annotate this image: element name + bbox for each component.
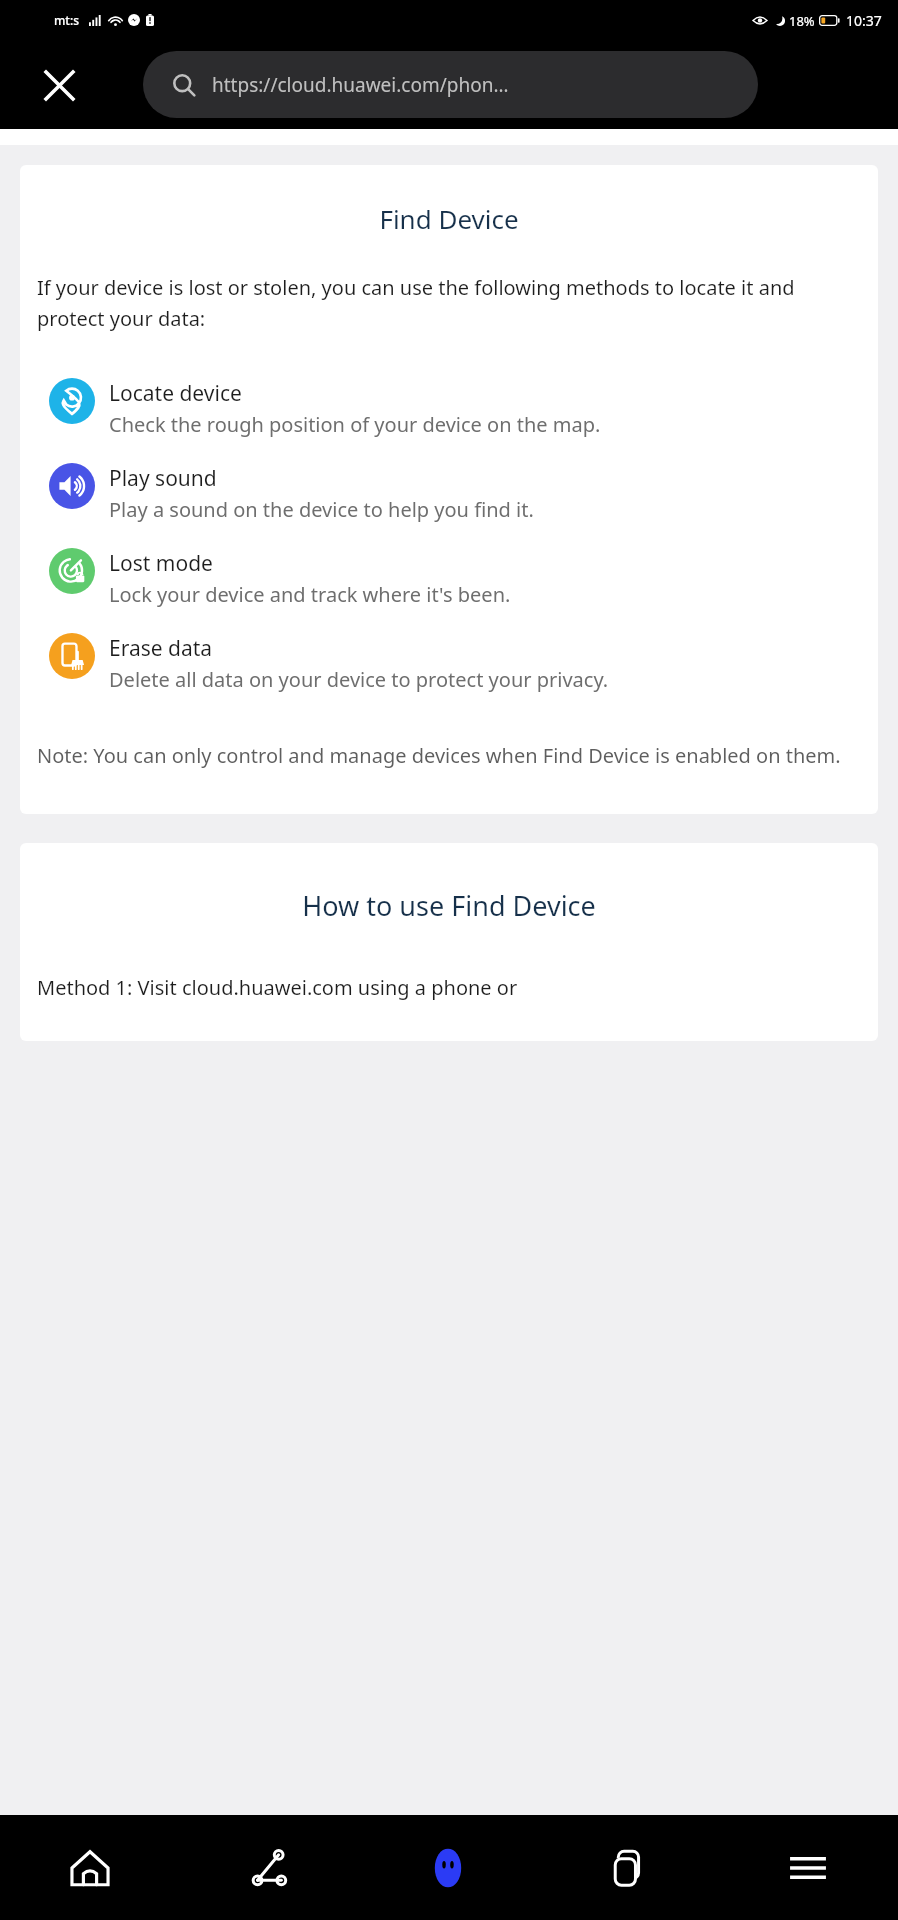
- staticText: Method 1: Visit cloud.huawei.com using a…: [37, 974, 518, 1001]
- button[interactable]: Home: [0, 1815, 179, 1920]
- button[interactable]: Close: [35, 61, 83, 109]
- staticText: How to use Find Device: [37, 887, 861, 924]
- button[interactable]: https://cloud.huawei.com/phon…: [143, 51, 758, 118]
- staticText: Play a sound on the device to help you f…: [109, 496, 534, 523]
- staticText: https://cloud.huawei.com/phon…: [212, 72, 509, 98]
- staticText: Play sound: [109, 464, 217, 493]
- staticText: Check the rough position of your device …: [109, 411, 601, 438]
- button[interactable]: Share: [179, 1815, 358, 1920]
- button[interactable]: Profile: [358, 1815, 538, 1920]
- staticText: Lost mode: [109, 549, 213, 578]
- staticText: Note: You can only control and manage de…: [37, 742, 841, 769]
- staticText: If your device is lost or stolen, you ca…: [37, 274, 861, 332]
- staticText: Find Device: [37, 201, 861, 236]
- staticText: 10:37: [846, 11, 882, 30]
- button[interactable]: Play sound: [37, 463, 861, 523]
- staticText: 18%: [789, 12, 815, 30]
- button[interactable]: Lost mode: [37, 548, 861, 608]
- staticText: Locate device: [109, 379, 242, 408]
- staticText: Delete all data on your device to protec…: [109, 666, 609, 693]
- staticText: Lock your device and track where it's be…: [109, 581, 511, 608]
- staticText: mt:s: [54, 12, 80, 28]
- button[interactable]: Erase data: [37, 633, 861, 693]
- staticText: Erase data: [109, 634, 213, 663]
- button[interactable]: Menu: [718, 1815, 898, 1920]
- button[interactable]: Locate device: [37, 378, 861, 438]
- button[interactable]: Tabs: [538, 1815, 718, 1920]
